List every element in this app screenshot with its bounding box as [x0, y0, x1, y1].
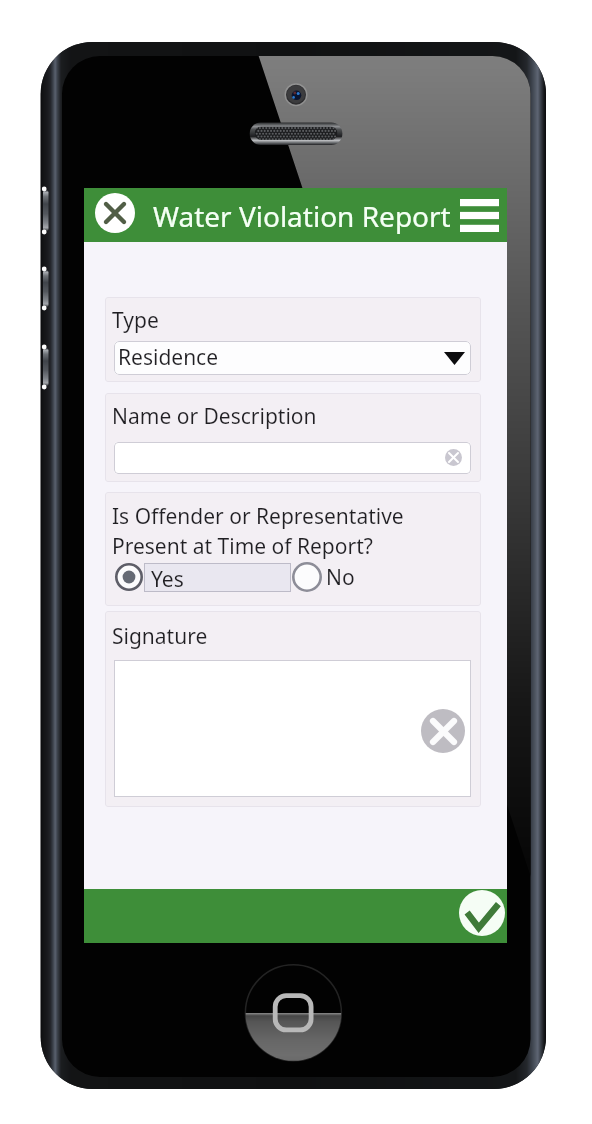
staticText: Name or Description [112, 402, 317, 431]
button[interactable]: Clear text [114, 442, 471, 474]
staticText: Signature [112, 622, 208, 651]
staticText: Water Violation Report [153, 197, 451, 235]
button[interactable]: Clear signature [421, 709, 465, 753]
button[interactable]: No [292, 562, 355, 592]
staticText: Is Offender or Representative [112, 502, 404, 531]
button[interactable]: Yes [114, 562, 291, 592]
button[interactable]: Submit [459, 890, 505, 936]
staticText: Yes [151, 565, 184, 594]
button[interactable]: Close [95, 193, 135, 233]
button[interactable]: Clear text [445, 449, 462, 466]
staticText: Present at Time of Report? [112, 532, 373, 561]
staticText: No [326, 563, 355, 592]
button[interactable]: Menu [456, 192, 502, 238]
button[interactable]: Signature pad [114, 660, 471, 797]
staticText: Residence [118, 343, 219, 372]
staticText: Type [112, 306, 159, 335]
button[interactable]: Residence [114, 341, 471, 375]
